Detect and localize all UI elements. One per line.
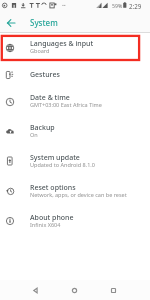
button[interactable]: Home — [62, 280, 87, 300]
staticText: Updated to Android 8.1.0 — [30, 161, 95, 168]
button[interactable]: Date & time — [0, 87, 150, 116]
button[interactable]: Back — [23, 280, 48, 300]
staticText: 59% — [112, 2, 123, 9]
staticText: System update — [30, 153, 80, 163]
button[interactable]: Back — [2, 14, 19, 31]
staticText: Network, apps, or device can be reset — [30, 191, 127, 198]
staticText: Reset options — [30, 183, 76, 193]
staticText: Infinix X604 — [30, 221, 61, 228]
button[interactable]: Languages & input — [0, 33, 150, 62]
button[interactable]: About phone — [0, 206, 150, 236]
button[interactable]: System update — [0, 146, 150, 176]
staticText: Gestures — [30, 70, 60, 80]
staticText: Gboard — [30, 47, 50, 54]
staticText: On — [30, 131, 38, 138]
button[interactable]: Recent apps — [101, 280, 126, 300]
staticText: Backup — [30, 123, 55, 133]
button[interactable]: Reset options — [0, 176, 150, 206]
button[interactable]: Gestures — [0, 62, 150, 87]
staticText: Date & time — [30, 93, 70, 103]
staticText: System — [30, 17, 58, 28]
staticText: GMT+03:00 East Africa Time — [30, 101, 102, 108]
button[interactable]: Backup — [0, 116, 150, 146]
staticText: About phone — [30, 213, 74, 223]
staticText: 2:29 — [129, 2, 142, 10]
staticText: Languages & input — [30, 39, 94, 49]
